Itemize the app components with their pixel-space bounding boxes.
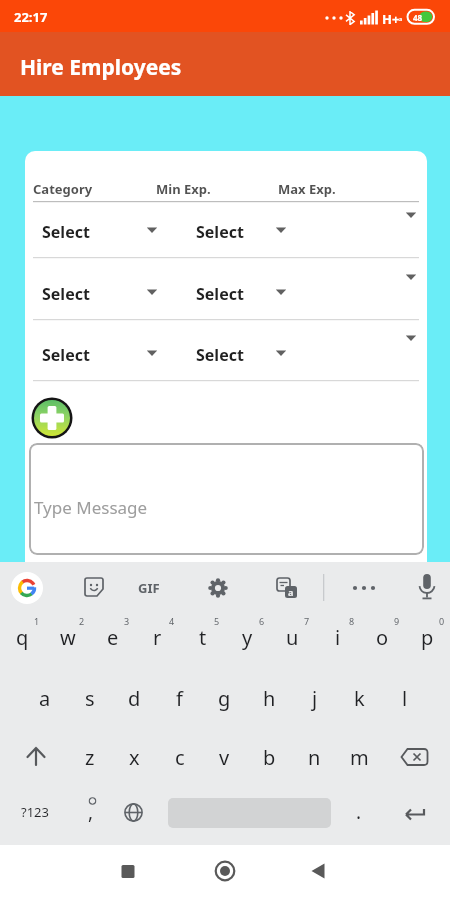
- staticText: 1: [34, 615, 40, 627]
- button[interactable]: [396, 732, 441, 782]
- button[interactable]: [11, 572, 43, 604]
- staticText: k: [354, 685, 365, 712]
- staticText: n: [308, 744, 321, 771]
- button[interactable]: [31, 397, 73, 439]
- button[interactable]: [84, 577, 104, 597]
- staticText: 6: [259, 615, 265, 627]
- staticText: 3: [124, 615, 130, 627]
- staticText: q: [16, 624, 29, 651]
- staticText: u: [286, 624, 299, 651]
- button[interactable]: g: [202, 670, 247, 726]
- button[interactable]: Select: [42, 344, 90, 366]
- button[interactable]: e: [90, 609, 135, 665]
- staticText: x: [129, 744, 140, 771]
- staticText: p: [421, 624, 434, 651]
- button[interactable]: j: [292, 670, 337, 726]
- button[interactable]: d: [112, 670, 157, 726]
- button[interactable]: w: [45, 609, 90, 665]
- staticText: ᵃ: [399, 14, 403, 25]
- button[interactable]: GIF: [138, 579, 160, 597]
- staticText: s: [85, 685, 95, 712]
- staticText: d: [128, 685, 141, 712]
- staticText: c: [175, 744, 185, 771]
- button[interactable]: n: [292, 729, 337, 785]
- staticText: o: [376, 624, 389, 651]
- staticText: 5: [214, 615, 220, 627]
- button[interactable]: [14, 732, 59, 782]
- staticText: .: [356, 799, 362, 825]
- button[interactable]: Select: [196, 283, 244, 305]
- button[interactable]: m: [337, 729, 382, 785]
- staticText: y: [242, 624, 253, 651]
- button[interactable]: v: [202, 729, 247, 785]
- button[interactable]: k: [337, 670, 382, 726]
- button[interactable]: [305, 858, 331, 884]
- staticText: Max Exp.: [278, 180, 336, 198]
- staticText: H+: [382, 10, 400, 28]
- staticText: 48: [413, 12, 423, 23]
- staticText: f: [176, 685, 183, 712]
- staticText: 2: [79, 615, 85, 627]
- staticText: 4: [169, 615, 175, 627]
- button[interactable]: [122, 801, 145, 824]
- button[interactable]: y: [225, 609, 270, 665]
- button[interactable]: Select: [42, 283, 90, 305]
- button[interactable]: a: [276, 577, 298, 599]
- button[interactable]: ?123: [10, 784, 60, 840]
- button[interactable]: f: [157, 670, 202, 726]
- staticText: w: [60, 624, 76, 651]
- staticText: l: [402, 685, 408, 712]
- staticText: GIF: [138, 579, 160, 597]
- button[interactable]: q: [0, 609, 45, 665]
- button[interactable]: o: [360, 609, 405, 665]
- button[interactable]: l: [382, 670, 427, 726]
- staticText: e: [107, 624, 119, 651]
- button[interactable]: u: [270, 609, 315, 665]
- button[interactable]: z: [67, 729, 112, 785]
- staticText: Hire Employees: [20, 53, 182, 82]
- button[interactable]: .: [345, 784, 373, 840]
- button[interactable]: t: [180, 609, 225, 665]
- staticText: t: [199, 624, 207, 651]
- button[interactable]: [212, 858, 238, 884]
- staticText: Type Message: [34, 496, 148, 519]
- button[interactable]: Select: [42, 221, 90, 243]
- staticText: g: [218, 685, 231, 712]
- button[interactable]: p: [405, 609, 450, 665]
- staticText: m: [350, 744, 369, 771]
- button[interactable]: Select: [196, 221, 244, 243]
- staticText: Min Exp.: [156, 180, 211, 198]
- staticText: 8: [349, 615, 355, 627]
- staticText: 0: [439, 615, 445, 627]
- button[interactable]: [115, 858, 141, 884]
- staticText: v: [219, 744, 230, 771]
- button[interactable]: b: [247, 729, 292, 785]
- staticText: 7: [304, 615, 310, 627]
- staticText: 9: [394, 615, 400, 627]
- button[interactable]: h: [247, 670, 292, 726]
- button[interactable]: r: [135, 609, 180, 665]
- button[interactable]: x: [112, 729, 157, 785]
- staticText: ,: [88, 799, 94, 825]
- button[interactable]: Select: [196, 344, 244, 366]
- button[interactable]: [398, 802, 434, 828]
- button[interactable]: s: [67, 670, 112, 726]
- staticText: Category: [33, 180, 93, 198]
- button[interactable]: a: [22, 670, 67, 726]
- staticText: z: [85, 744, 95, 771]
- button[interactable]: c: [157, 729, 202, 785]
- staticText: 22:17: [14, 8, 48, 26]
- staticText: j: [312, 685, 318, 712]
- button[interactable]: ,: [76, 784, 106, 840]
- staticText: a: [288, 586, 294, 598]
- button[interactable]: [416, 574, 438, 604]
- staticText: a: [39, 685, 51, 712]
- button[interactable]: [207, 577, 229, 599]
- staticText: i: [335, 624, 341, 651]
- button[interactable]: i: [315, 609, 360, 665]
- button[interactable]: Type Message: [29, 443, 424, 555]
- staticText: h: [263, 685, 276, 712]
- staticText: ?123: [21, 803, 49, 821]
- staticText: b: [263, 744, 276, 771]
